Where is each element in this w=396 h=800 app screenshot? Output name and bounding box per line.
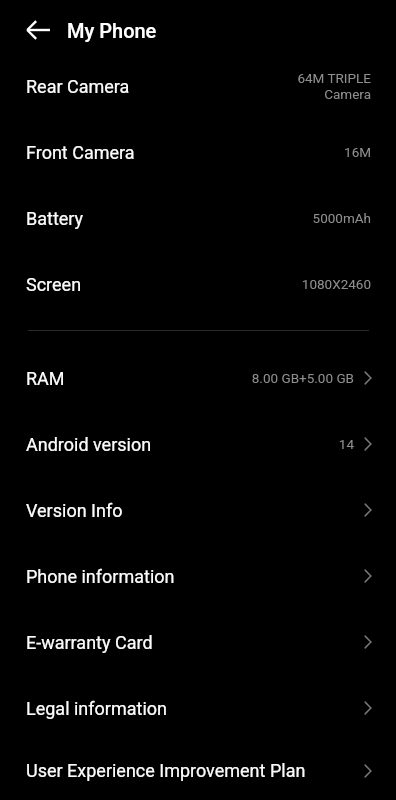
button[interactable]: User Experience Improvement Plan [0, 741, 396, 800]
button[interactable]: Screen [0, 251, 396, 317]
staticText: Screen [26, 274, 82, 295]
staticText: Android version [26, 434, 152, 455]
staticText: 1080X2460 [301, 276, 371, 292]
button[interactable]: Front Camera [0, 119, 396, 185]
staticText: Phone information [26, 566, 175, 587]
button[interactable]: Phone information [0, 543, 396, 609]
button[interactable]: Legal information [0, 675, 396, 741]
button[interactable]: Rear Camera [0, 53, 396, 119]
staticText: My Phone [67, 19, 157, 42]
staticText: Front Camera [26, 142, 135, 163]
staticText: Legal information [26, 698, 167, 719]
button[interactable]: Battery [0, 185, 396, 251]
staticText: Rear Camera [26, 76, 130, 97]
staticText: RAM [26, 368, 65, 389]
staticText: 14 [338, 436, 354, 452]
staticText: 64M TRIPLE Camera [297, 70, 371, 102]
staticText: 5000mAh [312, 210, 371, 226]
staticText: Version Info [26, 500, 123, 521]
staticText: User Experience Improvement Plan [26, 760, 306, 781]
button[interactable]: Version Info [0, 477, 396, 543]
button[interactable]: RAM [0, 345, 396, 411]
button[interactable]: E-warranty Card [0, 609, 396, 675]
staticText: E-warranty Card [26, 632, 153, 653]
button[interactable]: Android version [0, 411, 396, 477]
staticText: 16M [344, 144, 371, 160]
button[interactable]: Back [23, 15, 53, 45]
staticText: 8.00 GB+5.00 GB [251, 370, 354, 386]
staticText: Battery [26, 208, 84, 229]
